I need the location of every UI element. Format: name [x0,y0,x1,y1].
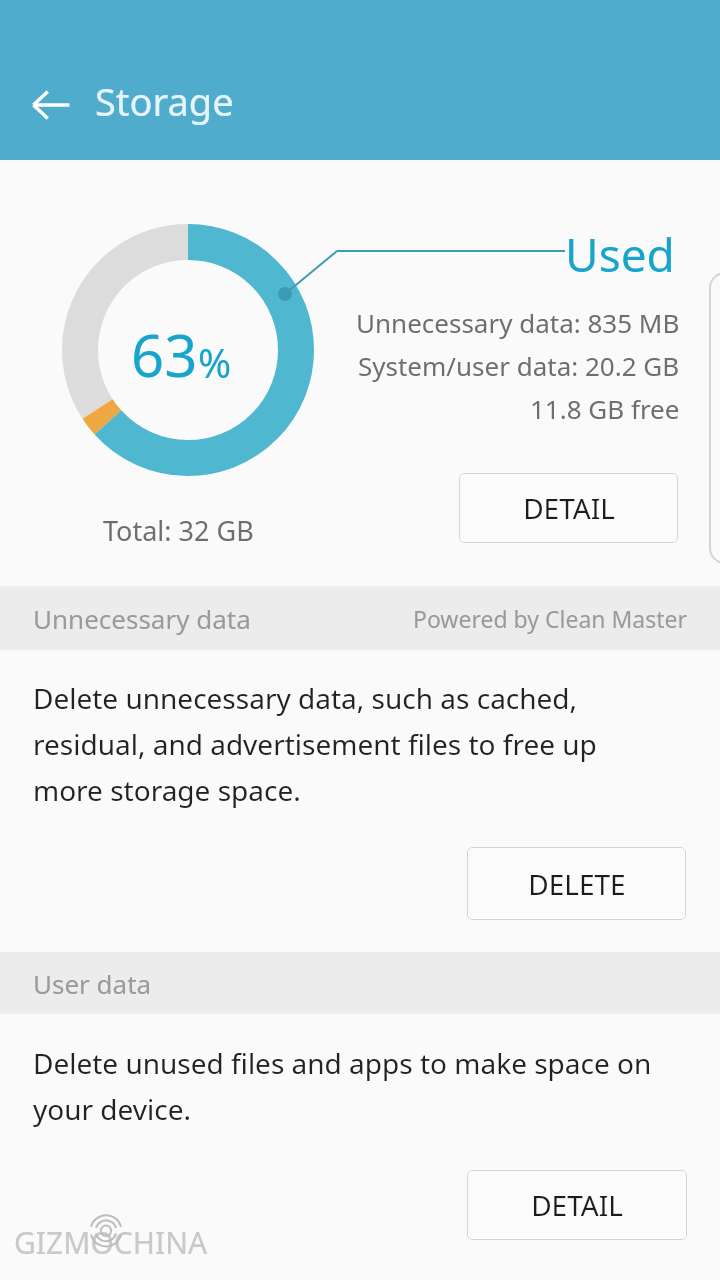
staticText: Delete unused files and apps to make spa… [33,1044,673,1128]
staticText: User data [33,966,152,1001]
staticText: Storage [95,75,234,127]
staticText: % [198,335,232,389]
staticText: Used [565,223,675,286]
staticText: DETAIL [531,1186,623,1224]
staticText: Unnecessary data: 835 MB [356,305,680,340]
staticText: GIZMOCHINA [14,1222,208,1263]
staticText: 11.8 GB free [530,391,680,426]
staticText: 63 [131,315,198,394]
staticText: Total: 32 GB [103,512,254,549]
button[interactable]: Back [18,72,84,138]
button[interactable]: DETAIL [467,1170,687,1240]
staticText: Unnecessary data [33,601,251,636]
staticText: DELETE [528,865,626,903]
staticText: Delete unnecessary data, such as cached,… [33,679,658,809]
staticText: DETAIL [523,489,615,527]
button[interactable]: DETAIL [459,473,678,543]
staticText: System/user data: 20.2 GB [358,348,680,383]
button[interactable]: DELETE [467,847,686,920]
staticText: Powered by Clean Master [413,603,688,634]
